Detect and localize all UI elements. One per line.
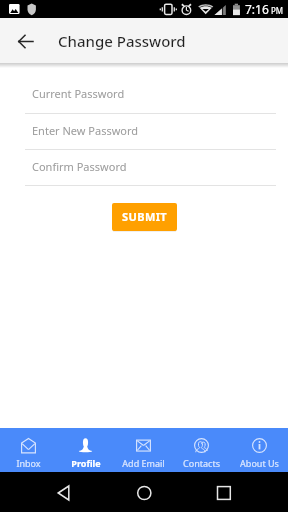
staticText: Contacts	[183, 457, 220, 469]
staticText: About Us	[240, 457, 279, 469]
staticText: Current Password	[32, 86, 125, 101]
button[interactable]: Inbox	[0, 428, 57, 472]
staticText: Confirm Password	[32, 159, 127, 174]
staticText: Profile	[71, 457, 101, 469]
staticText: PM	[271, 5, 284, 16]
staticText: Enter New Password	[32, 123, 139, 138]
button[interactable]: Enter New Password	[25, 117, 276, 150]
button[interactable]: About Us	[230, 428, 288, 472]
staticText: SUBMIT	[122, 209, 168, 224]
staticText: Change Password	[58, 31, 186, 51]
button[interactable]: Profile	[57, 428, 114, 472]
staticText: 7:16	[245, 1, 269, 17]
staticText: Inbox	[16, 457, 41, 469]
button[interactable]: Back	[6, 22, 44, 60]
button[interactable]: Confirm Password	[25, 153, 276, 186]
button[interactable]: Add Email	[114, 428, 172, 472]
button[interactable]: SUBMIT	[112, 203, 177, 231]
button[interactable]: Contacts	[172, 428, 230, 472]
staticText: Add Email	[122, 457, 165, 469]
button[interactable]: Current Password	[25, 80, 276, 114]
